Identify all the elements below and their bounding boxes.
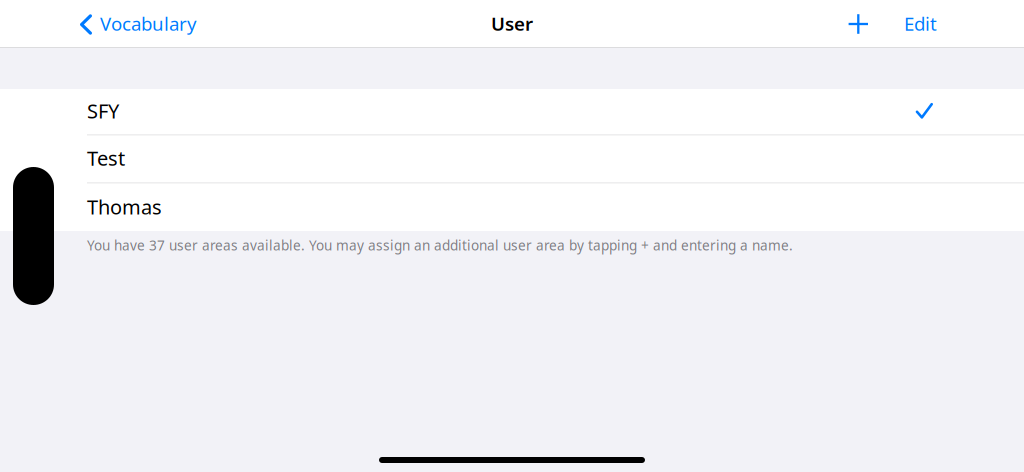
button[interactable]: Edit [875, 0, 1024, 50]
staticText: You have 37 user areas available. You ma… [87, 236, 793, 254]
staticText: Vocabulary [100, 11, 197, 36]
button[interactable]: SFY [0, 89, 1024, 136]
button[interactable]: Thomas [0, 184, 1024, 231]
button[interactable]: Add user area [838, 0, 875, 47]
button[interactable]: Vocabulary [0, 0, 207, 49]
staticText: Edit [904, 11, 937, 36]
staticText: User [491, 11, 533, 36]
staticText: Thomas [87, 193, 162, 220]
button[interactable]: Test [0, 136, 1024, 184]
staticText: SFY [87, 97, 119, 124]
staticText: Test [87, 145, 125, 171]
